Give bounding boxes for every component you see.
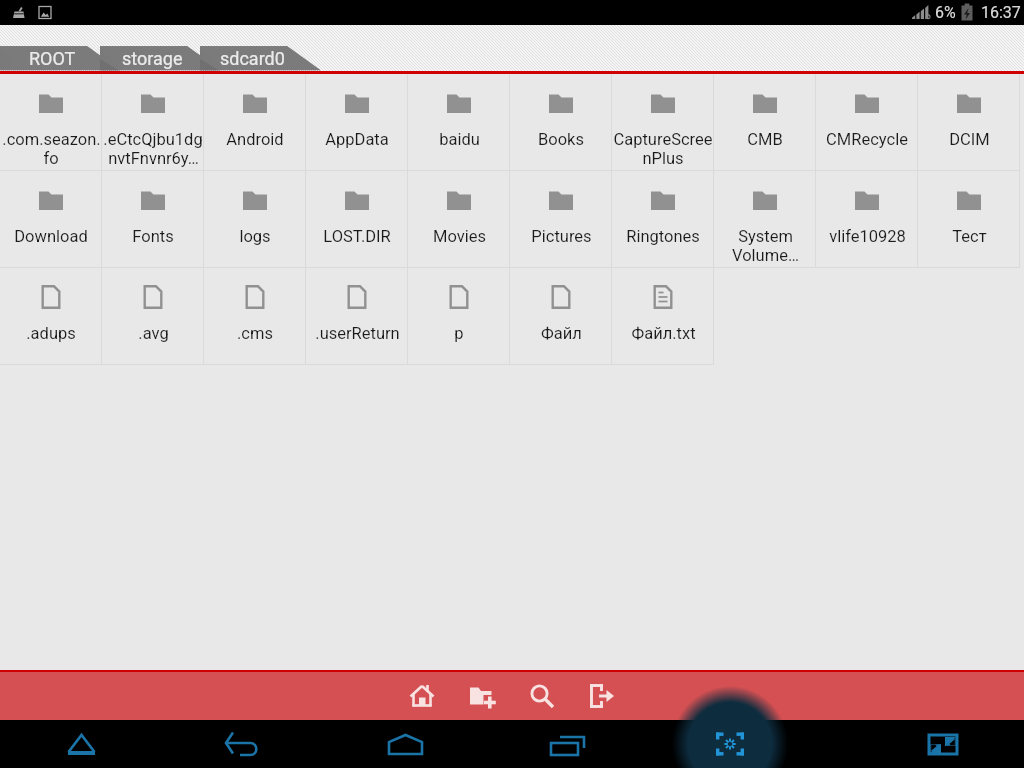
button[interactable]: Exit: [581, 675, 623, 717]
staticText: System: [738, 227, 793, 246]
button[interactable]: p: [408, 268, 510, 365]
staticText: Volume…: [732, 246, 799, 265]
button[interactable]: .eCtcQjbu1dg: [102, 74, 204, 171]
button[interactable]: Download: [0, 171, 102, 268]
button[interactable]: vlife10928: [816, 171, 918, 268]
staticText: .avg: [138, 324, 169, 343]
button[interactable]: Recent apps: [535, 722, 599, 766]
button[interactable]: Cleaner notification: [8, 0, 30, 25]
button[interactable]: .cms: [204, 268, 306, 365]
button[interactable]: Тест: [918, 171, 1020, 268]
button[interactable]: ROOT: [0, 46, 104, 71]
staticText: Pictures: [531, 227, 592, 246]
staticText: .com.seazon.: [2, 130, 101, 149]
button[interactable]: Resize window: [911, 722, 975, 766]
staticText: CMB: [747, 130, 783, 149]
button[interactable]: Файл: [510, 268, 612, 365]
button[interactable]: Файл.txt: [612, 268, 714, 365]
button[interactable]: .adups: [0, 268, 102, 365]
button[interactable]: LOST.DIR: [306, 171, 408, 268]
staticText: Android: [226, 130, 284, 149]
button[interactable]: Android: [204, 74, 306, 171]
staticText: .userReturn: [315, 324, 400, 343]
button[interactable]: CaptureScree: [612, 74, 714, 171]
staticText: LOST.DIR: [323, 227, 391, 246]
staticText: Файл: [541, 324, 582, 343]
button[interactable]: Home: [401, 675, 443, 717]
staticText: Ringtones: [626, 227, 700, 246]
staticText: AppData: [325, 130, 389, 149]
staticText: Файл.txt: [631, 324, 696, 343]
staticText: p: [454, 324, 464, 343]
staticText: storage: [122, 48, 183, 69]
button[interactable]: Eject: [49, 722, 113, 766]
button[interactable]: Home: [373, 722, 437, 766]
button[interactable]: Fonts: [102, 171, 204, 268]
button[interactable]: logs: [204, 171, 306, 268]
button[interactable]: Back: [211, 722, 275, 766]
staticText: nPlus: [642, 149, 684, 168]
staticText: fo: [43, 149, 59, 168]
button[interactable]: Movies: [408, 171, 510, 268]
staticText: .cms: [237, 324, 273, 343]
button[interactable]: .userReturn: [306, 268, 408, 365]
button[interactable]: Screenshot notification: [34, 0, 56, 25]
button[interactable]: Search: [521, 675, 563, 717]
button[interactable]: CMRecycle: [816, 74, 918, 171]
button[interactable]: .com.seazon.: [0, 74, 102, 171]
staticText: Fonts: [132, 227, 174, 246]
staticText: 6%: [935, 3, 956, 22]
staticText: .eCtcQjbu1dg: [103, 130, 203, 149]
staticText: vlife10928: [829, 227, 906, 246]
button[interactable]: .avg: [102, 268, 204, 365]
staticText: Books: [538, 130, 584, 149]
button[interactable]: DCIM: [918, 74, 1020, 171]
staticText: ROOT: [29, 48, 76, 69]
staticText: Тест: [952, 227, 987, 246]
staticText: nvtFnvnr6y…: [108, 149, 199, 168]
staticText: DCIM: [949, 130, 990, 149]
button[interactable]: baidu: [408, 74, 510, 171]
staticText: Download: [14, 227, 88, 246]
staticText: Movies: [433, 227, 486, 246]
button[interactable]: System: [714, 171, 816, 268]
button[interactable]: AppData: [306, 74, 408, 171]
staticText: CaptureScree: [613, 130, 713, 149]
button[interactable]: Pictures: [510, 171, 612, 268]
button[interactable]: sdcard0: [200, 46, 304, 71]
staticText: baidu: [439, 130, 480, 149]
staticText: 16:37: [981, 3, 1021, 22]
button[interactable]: CMB: [714, 74, 816, 171]
staticText: logs: [239, 227, 271, 246]
staticText: .adups: [26, 324, 76, 343]
button[interactable]: storage: [100, 46, 204, 71]
button[interactable]: Screenshot: [698, 722, 762, 766]
staticText: CMRecycle: [826, 130, 908, 149]
staticText: sdcard0: [220, 48, 285, 69]
button[interactable]: Ringtones: [612, 171, 714, 268]
button[interactable]: Books: [510, 74, 612, 171]
button[interactable]: New folder: [461, 675, 503, 717]
